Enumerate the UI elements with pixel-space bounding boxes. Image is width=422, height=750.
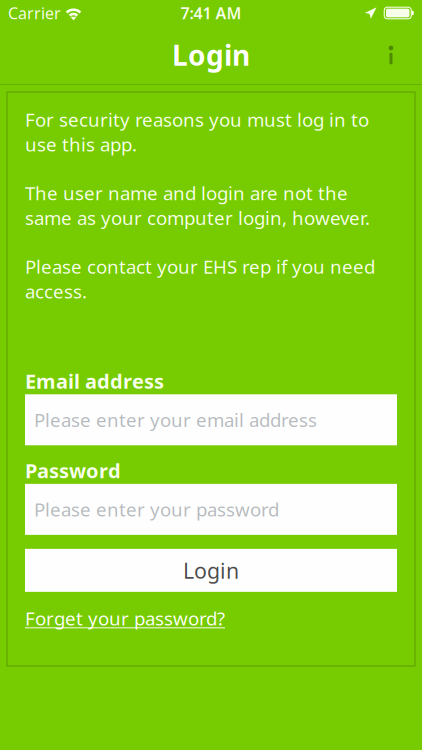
staticText: The user name and login are not the same…	[25, 181, 370, 230]
staticText: Password	[25, 457, 121, 484]
staticText: Carrier	[8, 2, 61, 24]
button[interactable]: Please enter your email address	[25, 394, 397, 445]
button[interactable]: Info	[369, 33, 422, 77]
button[interactable]: Please enter your password	[25, 484, 397, 535]
staticText: Login	[172, 36, 250, 74]
button[interactable]: Login	[25, 549, 397, 592]
staticText: For security reasons you must log in to …	[25, 107, 369, 157]
staticText: Please enter your email address	[34, 407, 317, 432]
staticText: Please contact your EHS rep if you need …	[25, 254, 375, 304]
staticText: Please enter your password	[34, 497, 279, 522]
staticText: Forget your password?	[25, 606, 225, 631]
button[interactable]: Forget your password?	[25, 606, 225, 631]
staticText: Email address	[25, 368, 164, 394]
staticText: 7:41 AM	[180, 2, 241, 24]
staticText: Login	[183, 556, 239, 584]
